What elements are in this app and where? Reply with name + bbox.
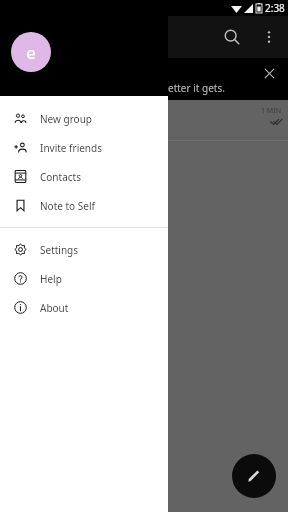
button[interactable]: New group — [0, 104, 168, 133]
staticText: e — [26, 41, 36, 64]
button[interactable]: Contacts — [0, 162, 168, 191]
button[interactable]: More options — [252, 20, 286, 54]
button[interactable]: Close — [256, 60, 282, 86]
button[interactable]: 1 MIN — [168, 100, 288, 140]
button[interactable]: e — [0, 0, 168, 96]
button[interactable]: Compose message — [232, 454, 276, 498]
button[interactable]: About — [0, 293, 168, 322]
button[interactable]: Search — [212, 17, 252, 57]
staticText: etter it gets. — [168, 81, 225, 95]
staticText: 2:38 — [265, 1, 285, 15]
staticText: Contacts — [40, 170, 81, 184]
button[interactable]: Settings — [0, 235, 168, 264]
staticText: New group — [40, 112, 92, 126]
button[interactable]: Note to Self — [0, 191, 168, 220]
staticText: 1 MIN — [261, 106, 282, 116]
staticText: Settings — [40, 243, 79, 257]
button[interactable]: Help — [0, 264, 168, 293]
staticText: About — [40, 301, 69, 315]
staticText: Invite friends — [40, 141, 102, 155]
button[interactable]: Invite friends — [0, 133, 168, 162]
staticText: Note to Self — [40, 199, 95, 213]
staticText: Help — [40, 272, 62, 286]
